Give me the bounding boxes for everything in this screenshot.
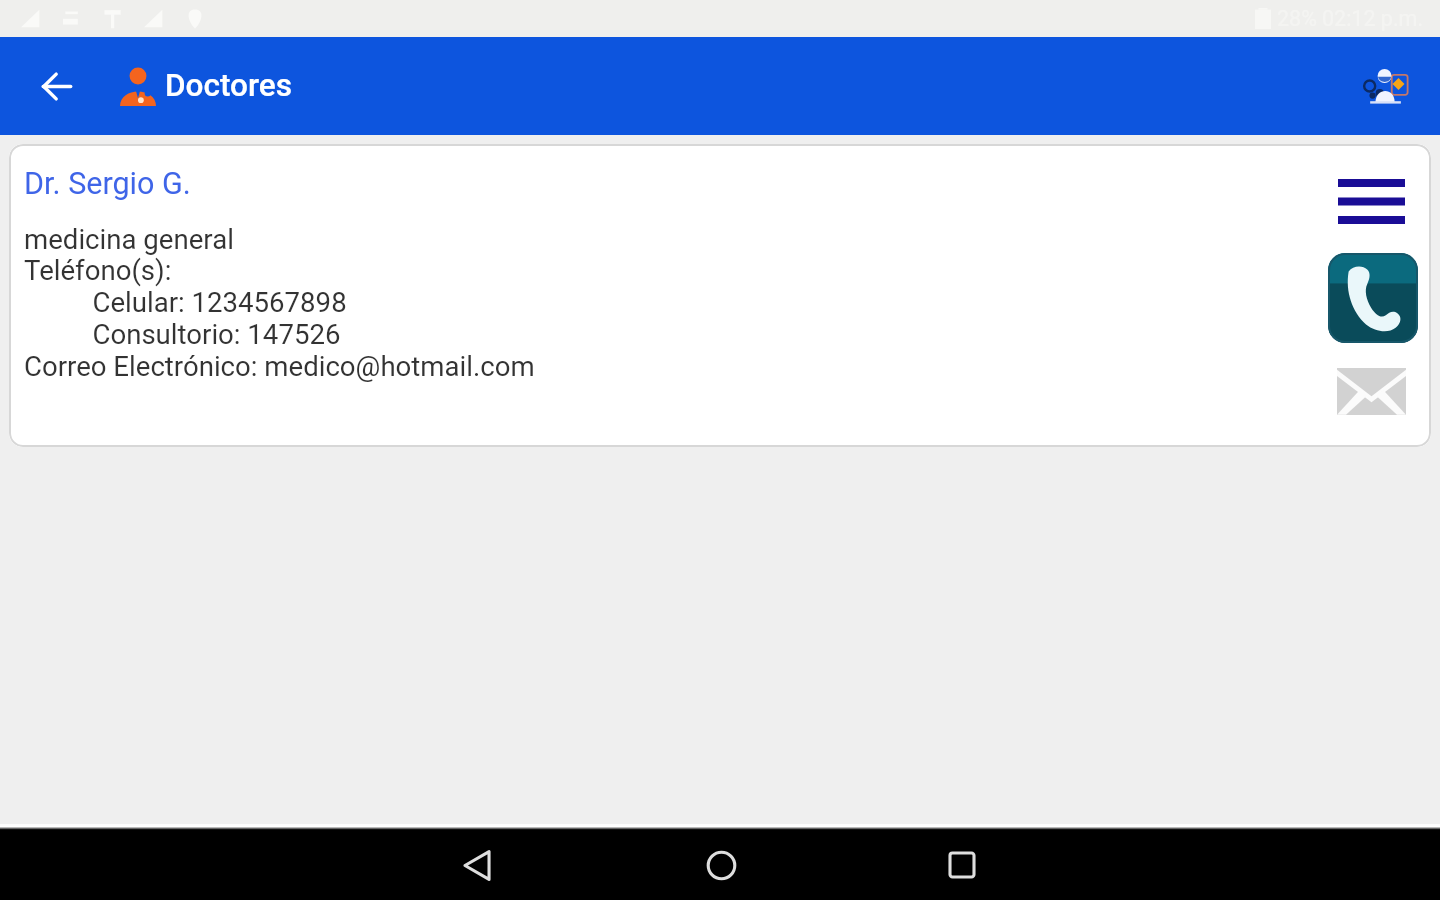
button[interactable]: Home xyxy=(687,831,755,899)
button[interactable]: Call xyxy=(1328,253,1418,343)
button[interactable]: Recents xyxy=(928,831,996,899)
button[interactable]: Back xyxy=(22,52,90,120)
button[interactable]: Email xyxy=(1319,358,1423,424)
staticText: Doctores xyxy=(165,67,292,104)
button[interactable]: Details xyxy=(1320,168,1422,234)
staticText: Dr. Sergio G. xyxy=(24,166,191,202)
button[interactable]: Dr. Sergio G. xyxy=(9,144,1431,447)
button[interactable]: Add doctor xyxy=(1354,54,1418,118)
button[interactable]: Back xyxy=(443,831,511,899)
staticText: medicina general Teléfono(s): Celular: 1… xyxy=(24,223,535,383)
